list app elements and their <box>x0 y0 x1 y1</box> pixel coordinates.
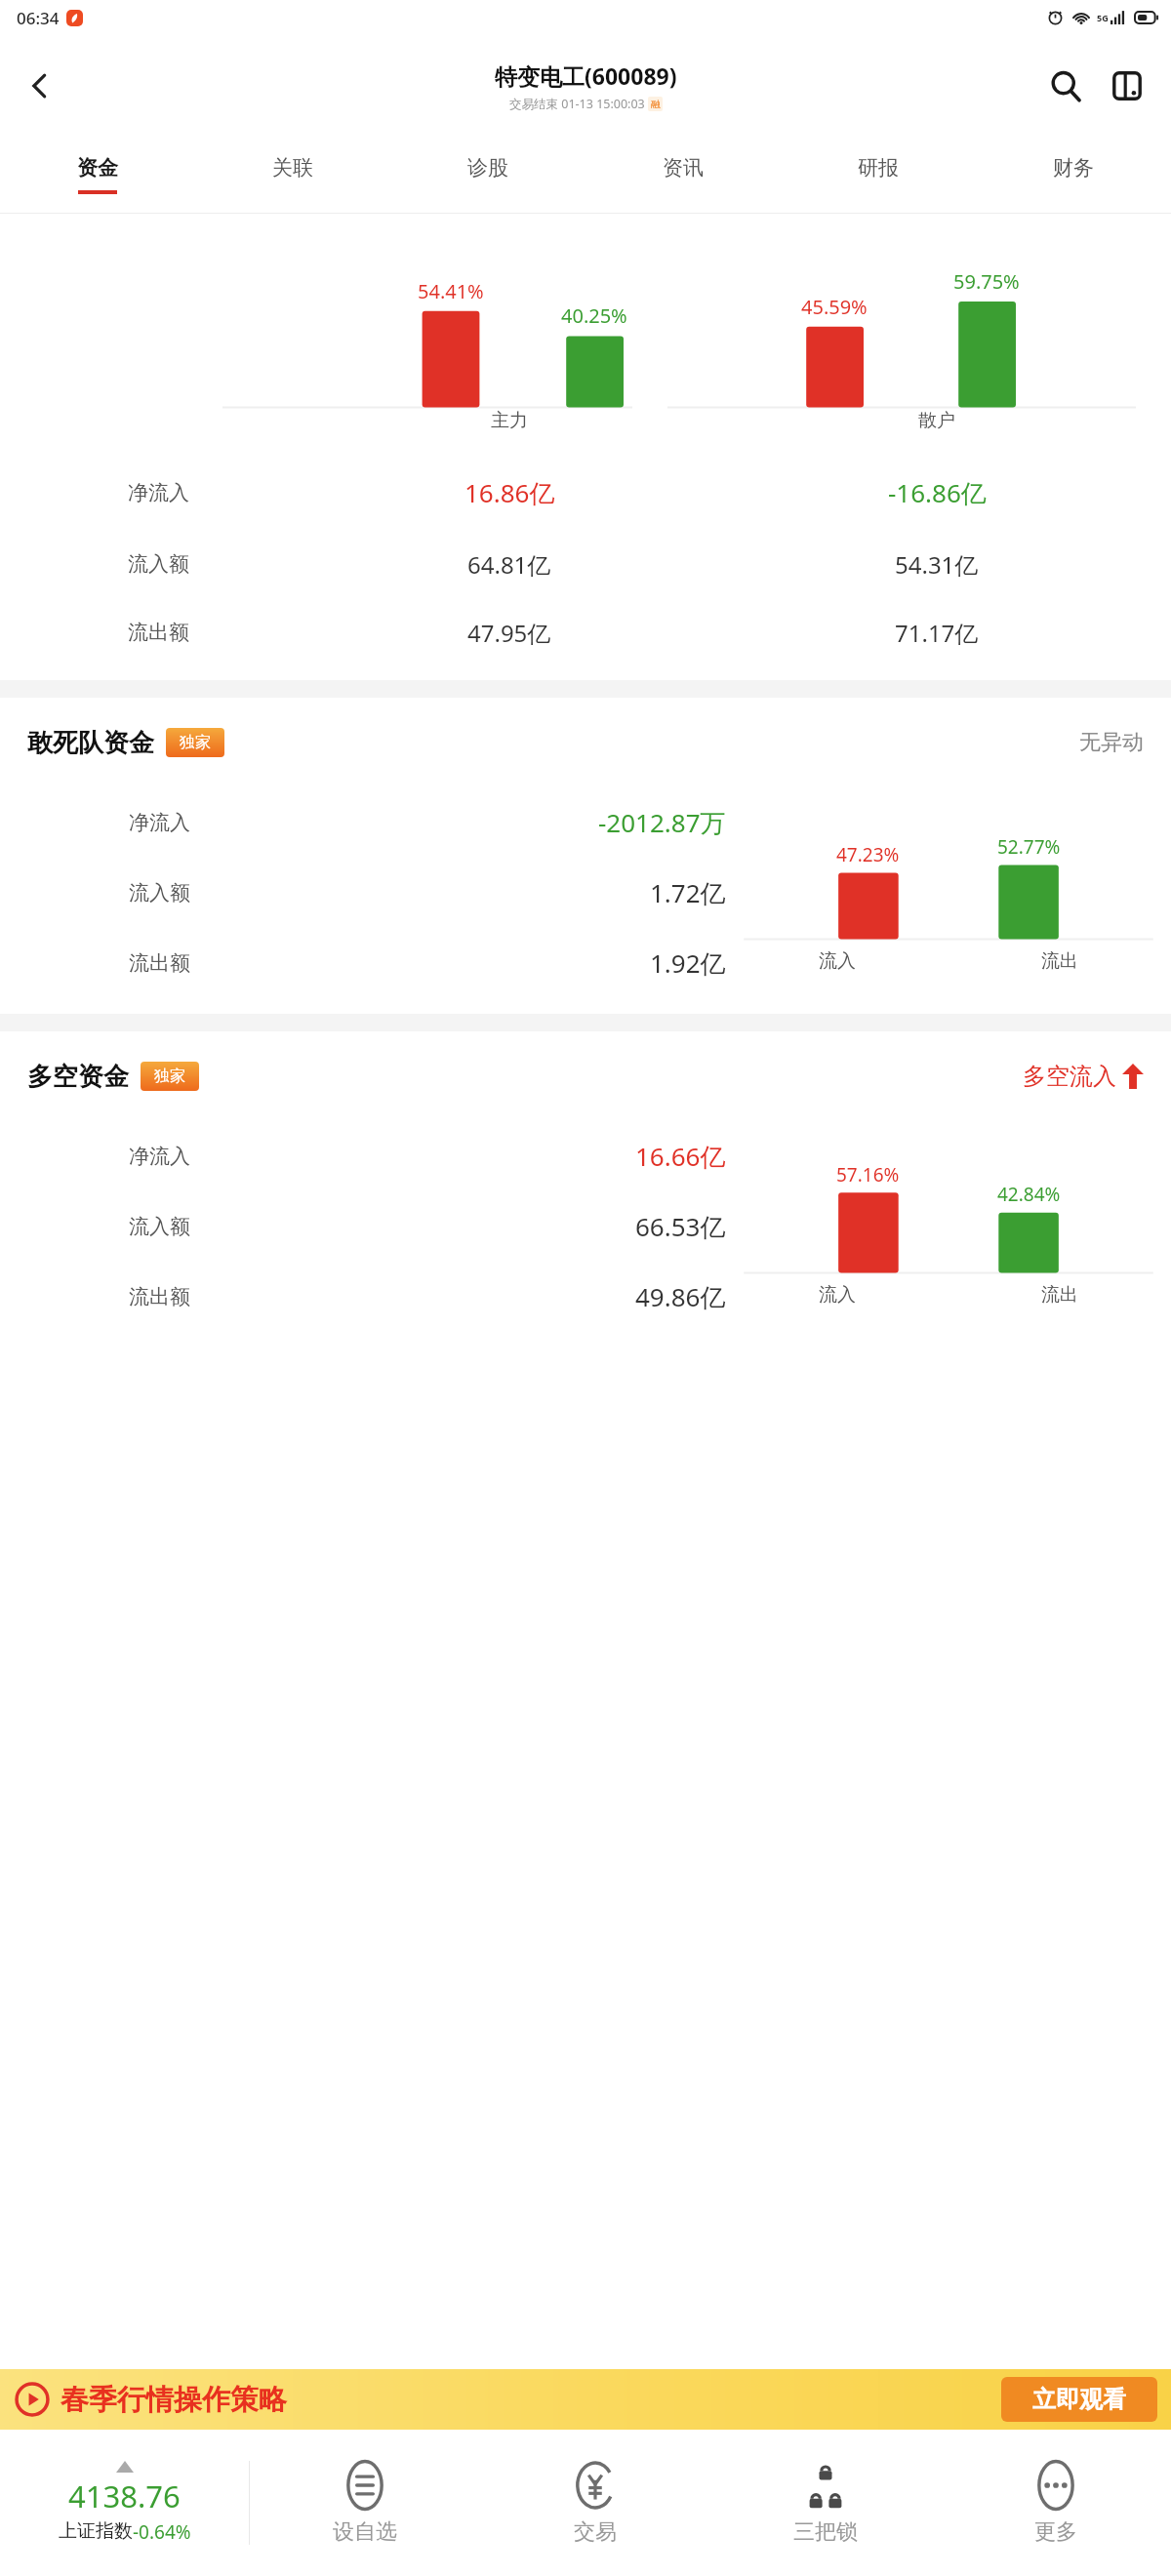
staticText: 57.16% <box>836 1162 900 1187</box>
button[interactable]: 净流入 <box>0 787 726 858</box>
button[interactable]: 净流入 <box>0 456 1171 530</box>
staticText: 交易结束 01-13 15:00:03 <box>509 96 645 112</box>
staticText: 更多 <box>1034 2518 1077 2546</box>
staticText: 财务 <box>1053 155 1094 181</box>
staticText: 52.77% <box>997 834 1061 860</box>
button[interactable]: 关联 <box>195 137 390 213</box>
button[interactable]: 资讯 <box>585 137 781 213</box>
staticText: 散户 <box>918 409 955 432</box>
staticText: 主力 <box>491 409 528 432</box>
button[interactable]: 流入额 <box>0 530 1171 598</box>
staticText: 多空流入 <box>1023 1062 1116 1091</box>
staticText: 4138.76 <box>68 2475 181 2516</box>
staticText: 47.95亿 <box>467 617 551 649</box>
staticText: 45.59% <box>801 294 868 320</box>
button[interactable]: 净流入 <box>0 1121 726 1191</box>
staticText: 敢死队资金 <box>27 727 154 759</box>
button[interactable]: 研报 <box>781 137 976 213</box>
staticText: 流出额 <box>129 950 190 976</box>
staticText: 独家 <box>154 1067 185 1086</box>
staticText: 设自选 <box>333 2518 397 2546</box>
staticText: 流出 <box>1041 949 1078 973</box>
staticText: 流入额 <box>129 880 190 906</box>
staticText: 流出 <box>1041 1283 1078 1307</box>
staticText: 关联 <box>272 155 313 181</box>
staticText: 春季行情操作策略 <box>61 2382 287 2418</box>
button[interactable]: 更多 <box>941 2430 1171 2576</box>
button[interactable]: 春季行情操作策略 <box>0 2369 1171 2430</box>
staticText: 交易 <box>574 2518 617 2546</box>
button[interactable]: 流出额 <box>0 1262 726 1332</box>
staticText: 1.92亿 <box>650 946 726 981</box>
button[interactable]: 流入额 <box>0 858 726 928</box>
button[interactable]: Chart view <box>1097 56 1157 116</box>
staticText: 54.41% <box>418 278 484 304</box>
staticText: 流出额 <box>129 1284 190 1309</box>
button[interactable]: 多空资金 <box>0 1031 1171 1121</box>
staticText: 流出额 <box>128 620 189 645</box>
button[interactable]: 4138.76 <box>0 2430 249 2576</box>
staticText: 1.72亿 <box>650 875 726 910</box>
staticText: 59.75% <box>953 268 1020 295</box>
staticText: 净流入 <box>128 480 189 505</box>
staticText: 诊股 <box>467 155 508 181</box>
staticText: 49.86亿 <box>635 1279 726 1314</box>
staticText: 净流入 <box>129 810 190 835</box>
button[interactable]: 交易 <box>480 2430 710 2576</box>
staticText: 16.86亿 <box>464 475 555 510</box>
staticText: 流入额 <box>128 551 189 577</box>
staticText: 流入 <box>819 949 856 973</box>
button[interactable]: 三把锁 <box>710 2430 941 2576</box>
staticText: 融 <box>651 99 661 110</box>
staticText: 资讯 <box>663 155 704 181</box>
button[interactable]: 敢死队资金 <box>0 698 1171 787</box>
button[interactable]: 设自选 <box>250 2430 480 2576</box>
button[interactable]: Back <box>8 54 72 118</box>
staticText: 多空资金 <box>27 1061 129 1093</box>
button[interactable]: 流出额 <box>0 598 1171 666</box>
staticText: 无异动 <box>1079 729 1144 756</box>
button[interactable]: 立即观看 <box>1001 2377 1157 2422</box>
staticText: 净流入 <box>129 1144 190 1169</box>
staticText: 5G <box>1097 12 1109 23</box>
staticText: 独家 <box>180 733 211 752</box>
button[interactable]: 流出额 <box>0 928 726 998</box>
staticText: 71.17亿 <box>895 617 979 649</box>
staticText: 40.25% <box>561 302 627 329</box>
staticText: 立即观看 <box>1032 2385 1126 2414</box>
staticText: 三把锁 <box>793 2518 858 2546</box>
staticText: 66.53亿 <box>635 1209 726 1244</box>
staticText: 54.31亿 <box>895 548 979 581</box>
staticText: 42.84% <box>997 1182 1061 1207</box>
button[interactable]: 流入额 <box>0 1191 726 1262</box>
button[interactable]: 资金 <box>0 137 195 213</box>
staticText: -16.86亿 <box>888 475 987 510</box>
staticText: 06:34 <box>17 7 60 29</box>
button[interactable]: 诊股 <box>390 137 585 213</box>
staticText: 16.66亿 <box>635 1139 726 1174</box>
staticText: 上证指数 <box>59 2519 133 2543</box>
staticText: 流入额 <box>129 1214 190 1239</box>
staticText: 资金 <box>77 155 118 181</box>
staticText: -0.64% <box>133 2519 191 2545</box>
staticText: 特变电工(600089) <box>495 60 677 91</box>
button[interactable]: Search <box>1034 55 1097 117</box>
staticText: -2012.87万 <box>598 805 726 840</box>
staticText: 64.81亿 <box>467 548 551 581</box>
staticText: 流入 <box>819 1283 856 1307</box>
staticText: 47.23% <box>836 842 900 867</box>
button[interactable]: 财务 <box>976 137 1171 213</box>
staticText: 研报 <box>858 155 899 181</box>
